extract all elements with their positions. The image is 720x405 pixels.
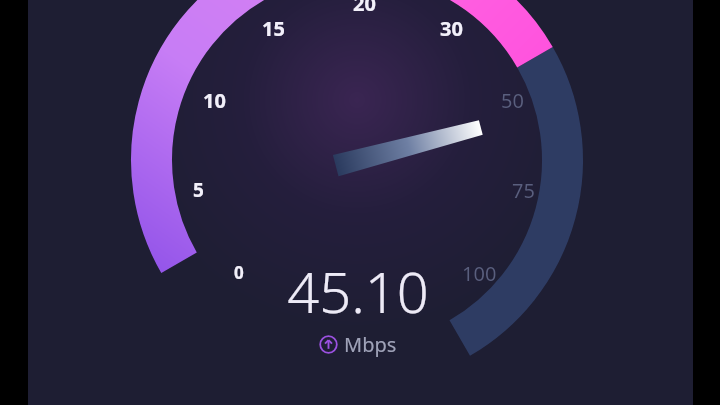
button[interactable]: 45.10 (287, 253, 429, 329)
staticText: 0 (234, 261, 244, 284)
staticText: 45.10 (287, 253, 429, 329)
staticText: 75 (512, 177, 535, 204)
staticText: 50 (501, 87, 524, 114)
staticText: 15 (262, 15, 285, 42)
button[interactable]: Speed gauge (28, 0, 693, 405)
staticText: 5 (193, 177, 204, 203)
staticText: 100 (462, 260, 497, 287)
staticText: Mbps (344, 331, 397, 358)
staticText: 10 (203, 87, 226, 114)
other: Upload (319, 335, 338, 354)
staticText: 30 (440, 15, 463, 42)
button[interactable]: Upload (319, 331, 397, 358)
staticText: 20 (353, 0, 376, 17)
